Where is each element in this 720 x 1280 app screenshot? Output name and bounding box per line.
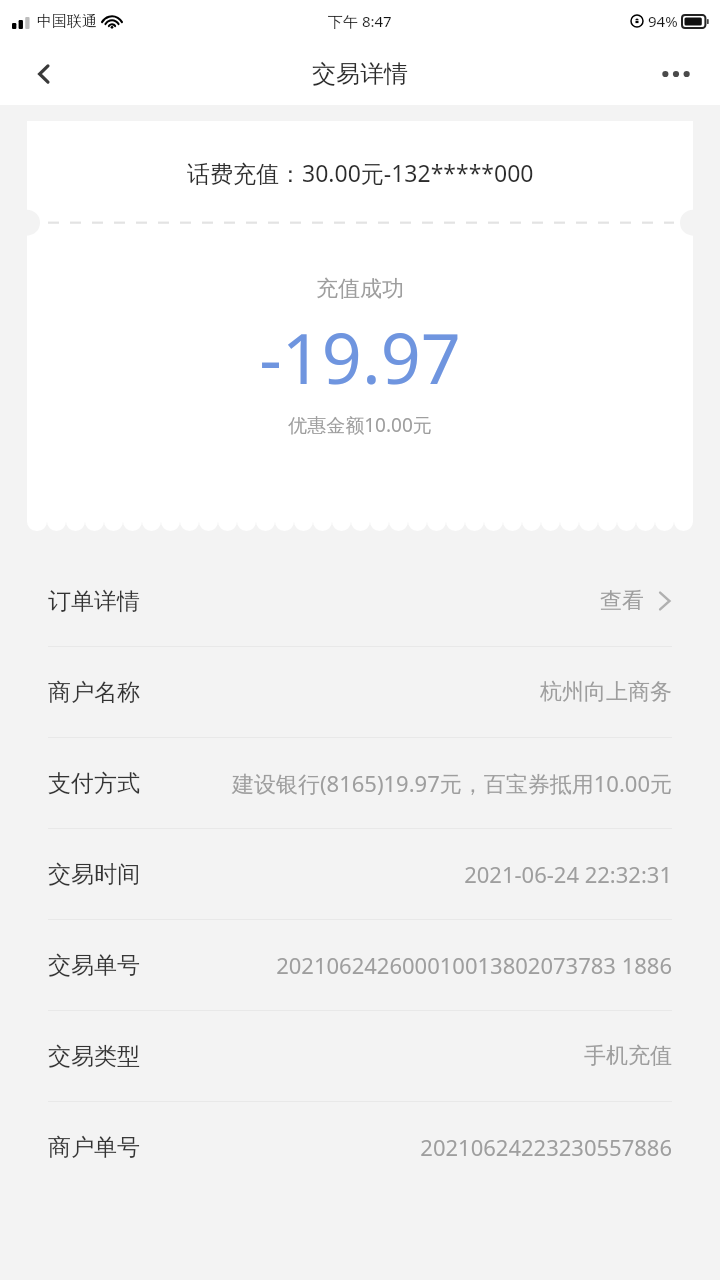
staticText: 交易类型 [48,1042,188,1071]
button[interactable]: Back [22,52,66,96]
staticText: 下午 8:47 [328,11,392,31]
staticText: 20210624223230557886 [200,1132,672,1162]
staticText: 查看 [600,587,644,615]
staticText: 订单详情 [48,587,140,616]
staticText: 交易时间 [48,860,188,889]
staticText: 94% [648,11,678,31]
staticText: 202106242600010013802073783 1886 [200,950,672,980]
staticText: 2021-06-24 22:32:31 [200,859,672,889]
button[interactable]: 交易时间 [0,829,720,919]
staticText: 话费充值：30.00元-132*****000 [187,157,534,188]
staticText: 交易单号 [48,951,188,980]
staticText: 充值成功 [27,275,693,303]
staticText: 中国联通 [37,12,97,31]
button[interactable]: 支付方式 [0,738,720,828]
button[interactable]: 商户名称 [0,647,720,737]
staticText: 优惠金额10.00元 [27,412,693,438]
button[interactable]: 交易类型 [0,1011,720,1101]
staticText: 商户名称 [48,678,188,707]
button[interactable]: More options [654,52,698,96]
staticText: 杭州向上商务 [200,678,672,706]
staticText: 建设银行(8165)19.97元，百宝券抵用10.00元 [200,768,672,798]
staticText: 商户单号 [48,1133,188,1162]
button[interactable]: 交易单号 [0,920,720,1010]
button[interactable]: 商户单号 [0,1102,720,1192]
staticText: -19.97 [27,309,693,404]
button[interactable]: 订单详情 [0,556,720,646]
staticText: 手机充值 [200,1042,672,1070]
staticText: 支付方式 [48,769,188,798]
staticText: 交易详情 [312,59,408,89]
